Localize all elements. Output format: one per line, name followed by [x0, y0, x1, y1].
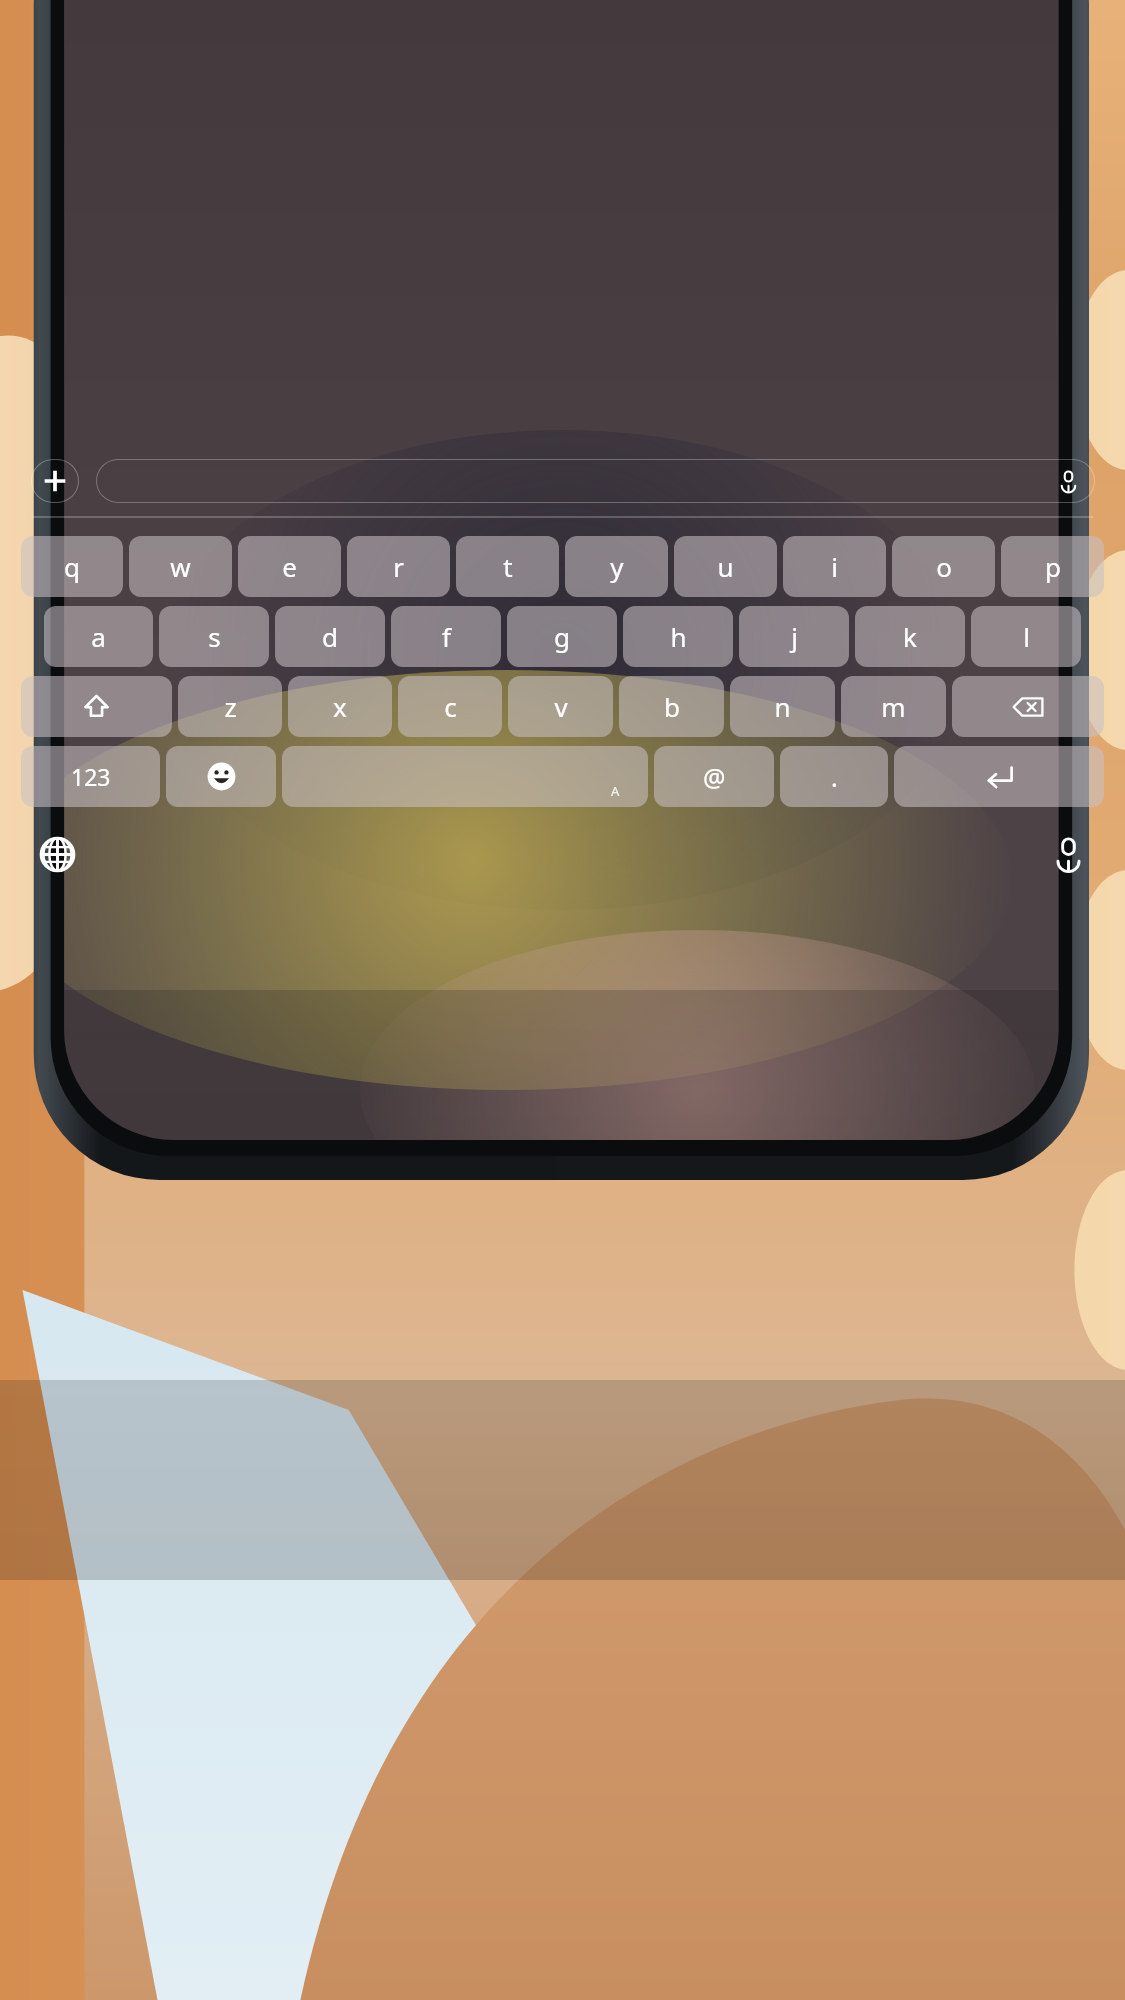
- button[interactable]: g: [507, 606, 617, 667]
- staticText: b: [664, 689, 680, 724]
- button[interactable]: n: [730, 676, 835, 737]
- button[interactable]: Shift: [21, 676, 172, 737]
- button[interactable]: Emoji: [166, 746, 276, 807]
- staticText: y: [610, 549, 624, 584]
- button[interactable]: m: [841, 676, 946, 737]
- staticText: q: [64, 549, 80, 584]
- staticText: e: [282, 549, 297, 584]
- button[interactable]: Voice input: [96, 459, 1095, 503]
- staticText: p: [1045, 549, 1061, 584]
- staticText: r: [393, 549, 404, 584]
- staticText: o: [936, 549, 952, 584]
- staticText: k: [903, 619, 917, 654]
- staticText: g: [554, 619, 570, 654]
- button[interactable]: e: [238, 536, 341, 597]
- button[interactable]: Voice input: [1056, 469, 1081, 494]
- button[interactable]: Change language: [33, 830, 81, 878]
- button[interactable]: @: [654, 746, 774, 807]
- button[interactable]: i: [783, 536, 886, 597]
- button[interactable]: v: [508, 676, 613, 737]
- button[interactable]: j: [739, 606, 849, 667]
- button[interactable]: d: [275, 606, 385, 667]
- staticText: x: [333, 689, 347, 724]
- button[interactable]: y: [565, 536, 668, 597]
- button[interactable]: c: [398, 676, 502, 737]
- button[interactable]: .: [780, 746, 888, 807]
- button[interactable]: l: [971, 606, 1081, 667]
- staticText: s: [208, 619, 221, 654]
- staticText: i: [831, 549, 838, 584]
- staticText: h: [670, 619, 687, 654]
- button[interactable]: Backspace: [952, 676, 1104, 737]
- button[interactable]: x: [288, 676, 392, 737]
- button[interactable]: r: [347, 536, 450, 597]
- staticText: n: [774, 689, 791, 724]
- button[interactable]: q: [21, 536, 123, 597]
- button[interactable]: k: [855, 606, 965, 667]
- button[interactable]: u: [674, 536, 777, 597]
- button[interactable]: t: [456, 536, 559, 597]
- staticText: m: [881, 689, 906, 724]
- button[interactable]: Enter: [894, 746, 1104, 807]
- staticText: f: [442, 619, 451, 654]
- button[interactable]: w: [129, 536, 232, 597]
- staticText: d: [322, 619, 338, 654]
- button[interactable]: f: [391, 606, 501, 667]
- button[interactable]: b: [619, 676, 724, 737]
- staticText: 123: [71, 761, 111, 792]
- staticText: z: [224, 689, 237, 724]
- button[interactable]: Space: [282, 746, 648, 807]
- staticText: c: [444, 689, 457, 724]
- staticText: t: [503, 549, 513, 584]
- button[interactable]: z: [178, 676, 282, 737]
- staticText: u: [717, 549, 734, 584]
- button[interactable]: 123: [21, 746, 160, 807]
- staticText: l: [1023, 619, 1030, 654]
- staticText: j: [791, 619, 798, 654]
- staticText: a: [91, 619, 106, 654]
- staticText: w: [170, 549, 191, 584]
- staticText: A: [611, 782, 620, 800]
- staticText: @: [703, 760, 726, 794]
- button[interactable]: o: [892, 536, 995, 597]
- button[interactable]: Add attachment: [31, 459, 79, 503]
- button[interactable]: h: [623, 606, 733, 667]
- staticText: .: [831, 760, 838, 794]
- button[interactable]: s: [159, 606, 269, 667]
- staticText: v: [554, 689, 568, 724]
- button[interactable]: p: [1001, 536, 1104, 597]
- button[interactable]: a: [44, 606, 153, 667]
- button[interactable]: Voice typing: [1044, 830, 1092, 878]
